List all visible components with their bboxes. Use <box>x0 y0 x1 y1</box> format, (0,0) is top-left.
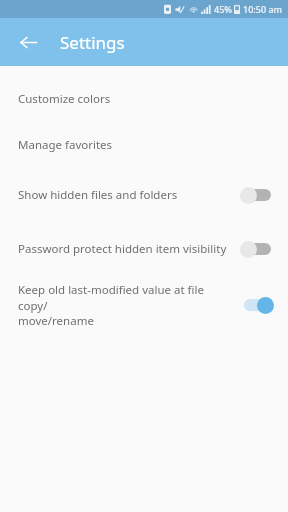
staticText: 10:50 am <box>243 3 283 15</box>
button[interactable]: Off <box>240 185 274 205</box>
staticText: Show hidden files and folders <box>18 187 232 203</box>
button[interactable]: Off <box>240 239 274 259</box>
button[interactable]: Manage favorites <box>0 122 288 168</box>
button[interactable]: On <box>240 295 274 315</box>
staticText: Settings <box>60 31 125 54</box>
staticText: Customize colors <box>18 91 274 107</box>
button[interactable]: Customize colors <box>0 76 288 122</box>
staticText: 45% <box>214 3 232 15</box>
button[interactable]: Back <box>8 22 48 62</box>
button[interactable]: Show hidden files and folders <box>0 168 288 222</box>
staticText: Password protect hidden item visibility <box>18 241 232 257</box>
button[interactable]: Password protect hidden item visibility <box>0 222 288 276</box>
staticText: Manage favorites <box>18 137 274 153</box>
staticText: Keep old last-modified value at file cop… <box>18 282 232 328</box>
button[interactable]: Keep old last-modified value at file cop… <box>0 276 288 334</box>
